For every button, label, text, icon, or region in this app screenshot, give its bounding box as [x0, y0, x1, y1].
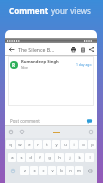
- button[interactable]: w: [16, 140, 24, 149]
- staticText: your views: [51, 5, 91, 16]
- button[interactable]: t: [43, 140, 51, 149]
- staticText: k: [78, 155, 81, 161]
- button[interactable]: g: [45, 153, 54, 162]
- staticText: g: [48, 155, 51, 161]
- staticText: j: [69, 155, 71, 161]
- button[interactable]: a: [8, 153, 16, 162]
- staticText: d: [29, 155, 32, 161]
- button[interactable]: Share: [87, 45, 96, 54]
- staticText: Rumandeep Singh: [21, 59, 59, 65]
- staticText: z: [24, 168, 26, 174]
- staticText: y: [55, 142, 58, 148]
- staticText: p: [91, 142, 94, 148]
- button[interactable]: Stickers: [19, 129, 25, 135]
- button[interactable]: x: [30, 166, 38, 175]
- staticText: r: [37, 142, 39, 148]
- staticText: m: [77, 168, 81, 174]
- button[interactable]: k: [75, 153, 84, 162]
- staticText: R: [12, 62, 16, 68]
- button[interactable]: j: [65, 153, 74, 162]
- staticText: x: [33, 168, 36, 174]
- button[interactable]: h: [55, 153, 64, 162]
- button[interactable]: Back: [7, 45, 16, 54]
- staticText: u: [64, 142, 67, 148]
- staticText: h: [58, 155, 61, 161]
- button[interactable]: m: [75, 166, 83, 175]
- button[interactable]: Save offline: [69, 45, 78, 54]
- staticText: o: [82, 142, 85, 148]
- staticText: n: [69, 168, 72, 174]
- button[interactable]: d: [26, 153, 34, 162]
- staticText: Post comment: [10, 118, 40, 124]
- button[interactable]: i: [70, 140, 78, 149]
- button[interactable]: More options: [88, 129, 94, 135]
- button[interactable]: u: [61, 140, 69, 149]
- button[interactable]: r: [34, 140, 42, 149]
- button[interactable]: Backspace: [84, 166, 96, 175]
- button[interactable]: z: [20, 166, 29, 175]
- button[interactable]: l: [85, 153, 94, 162]
- button[interactable]: e: [25, 140, 33, 149]
- staticText: v: [51, 168, 54, 174]
- button[interactable]: n: [66, 166, 74, 175]
- staticText: 1 day ago: [76, 62, 92, 67]
- staticText: Nice: [21, 65, 28, 70]
- staticText: w: [18, 142, 22, 148]
- staticText: e: [28, 142, 31, 148]
- button[interactable]: o: [79, 140, 87, 149]
- button[interactable]: v: [48, 166, 56, 175]
- button[interactable]: p: [88, 140, 96, 149]
- staticText: The Silence B...: [18, 46, 55, 53]
- staticText: f: [39, 155, 41, 161]
- staticText: a: [11, 155, 14, 161]
- button[interactable]: q: [6, 140, 15, 149]
- staticText: s: [20, 155, 23, 161]
- staticText: q: [9, 142, 12, 148]
- button[interactable]: Emoji: [8, 129, 14, 135]
- staticText: Comment: [9, 5, 51, 16]
- button[interactable]: b: [57, 166, 65, 175]
- button[interactable]: Send comment: [85, 117, 93, 125]
- button[interactable]: c: [39, 166, 47, 175]
- staticText: c: [42, 168, 45, 174]
- staticText: b: [60, 168, 63, 174]
- button[interactable]: Bookmark: [78, 45, 87, 54]
- button[interactable]: Shift: [6, 166, 19, 175]
- button[interactable]: R: [8, 59, 94, 70]
- button[interactable]: y: [52, 140, 60, 149]
- staticText: t: [46, 142, 48, 148]
- button[interactable]: s: [17, 153, 25, 162]
- button[interactable]: f: [35, 153, 44, 162]
- staticText: l: [89, 155, 91, 161]
- staticText: i: [73, 142, 75, 148]
